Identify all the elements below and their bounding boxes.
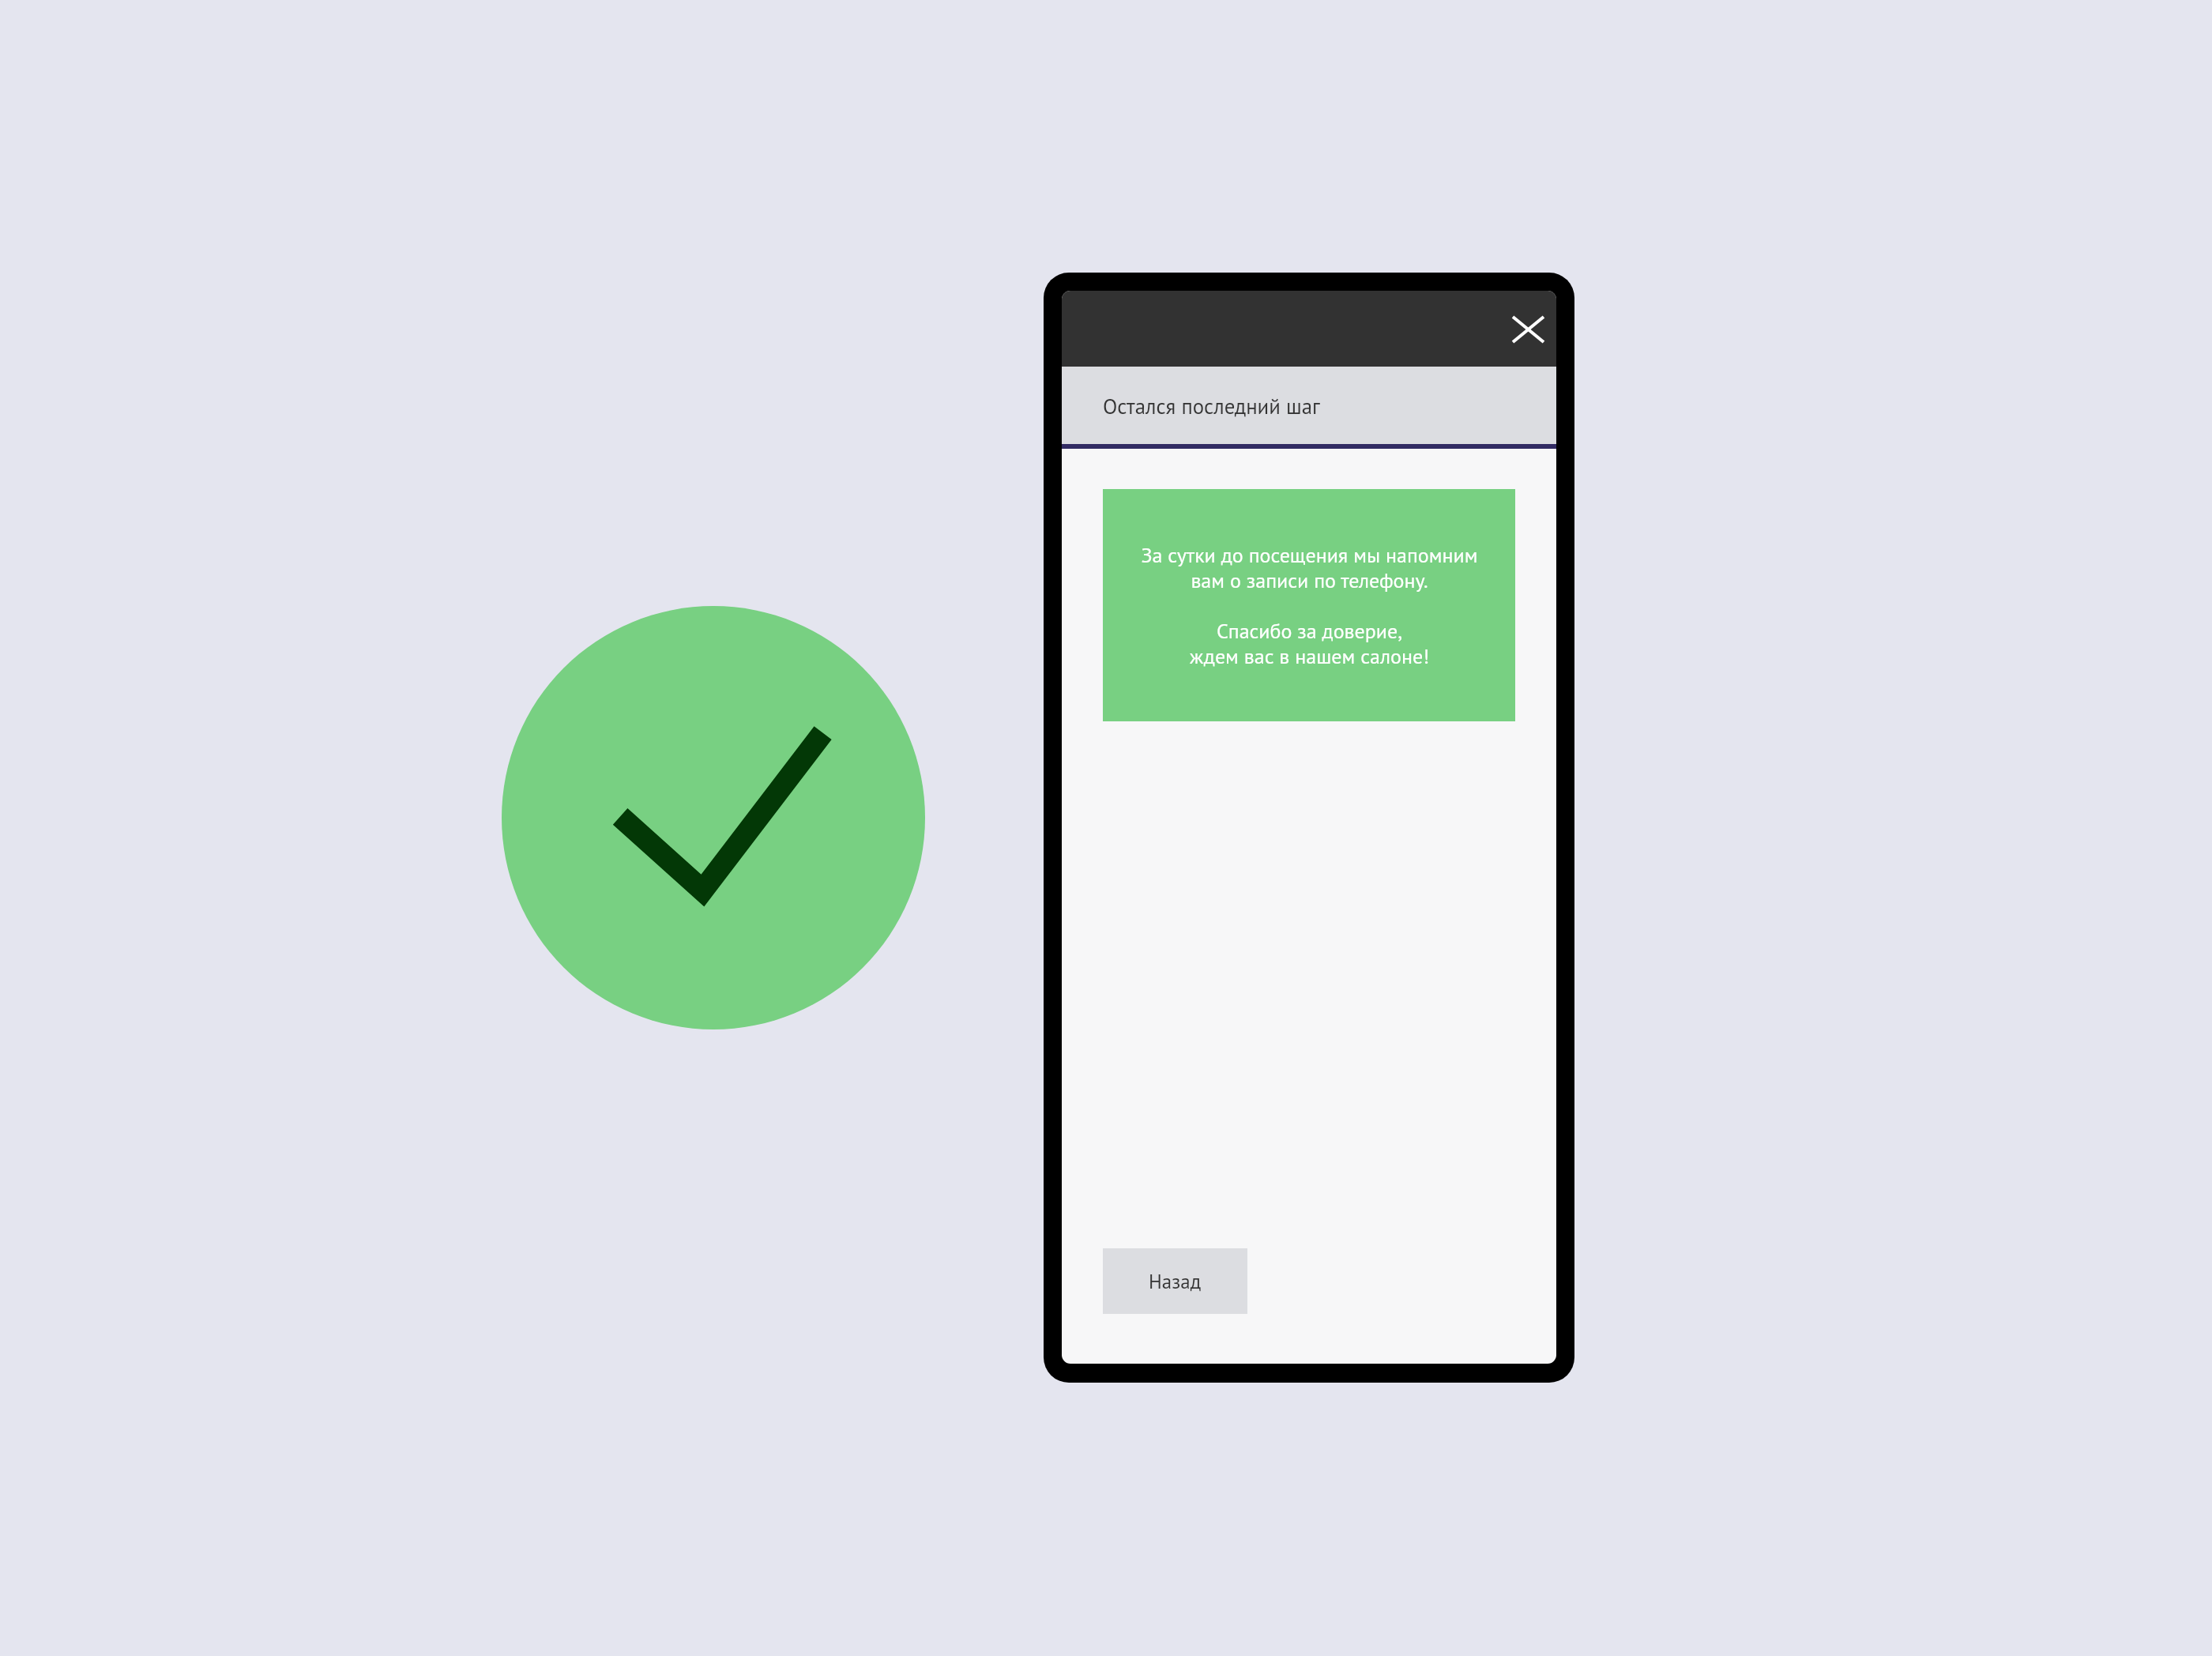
button[interactable]: Назад (1103, 1248, 1247, 1314)
staticText: Остался последний шаг (1103, 393, 1320, 420)
staticText: За сутки до посещения мы напомним вам о … (1141, 542, 1478, 669)
staticText: Назад (1149, 1269, 1202, 1294)
button[interactable]: Close (1503, 304, 1553, 355)
